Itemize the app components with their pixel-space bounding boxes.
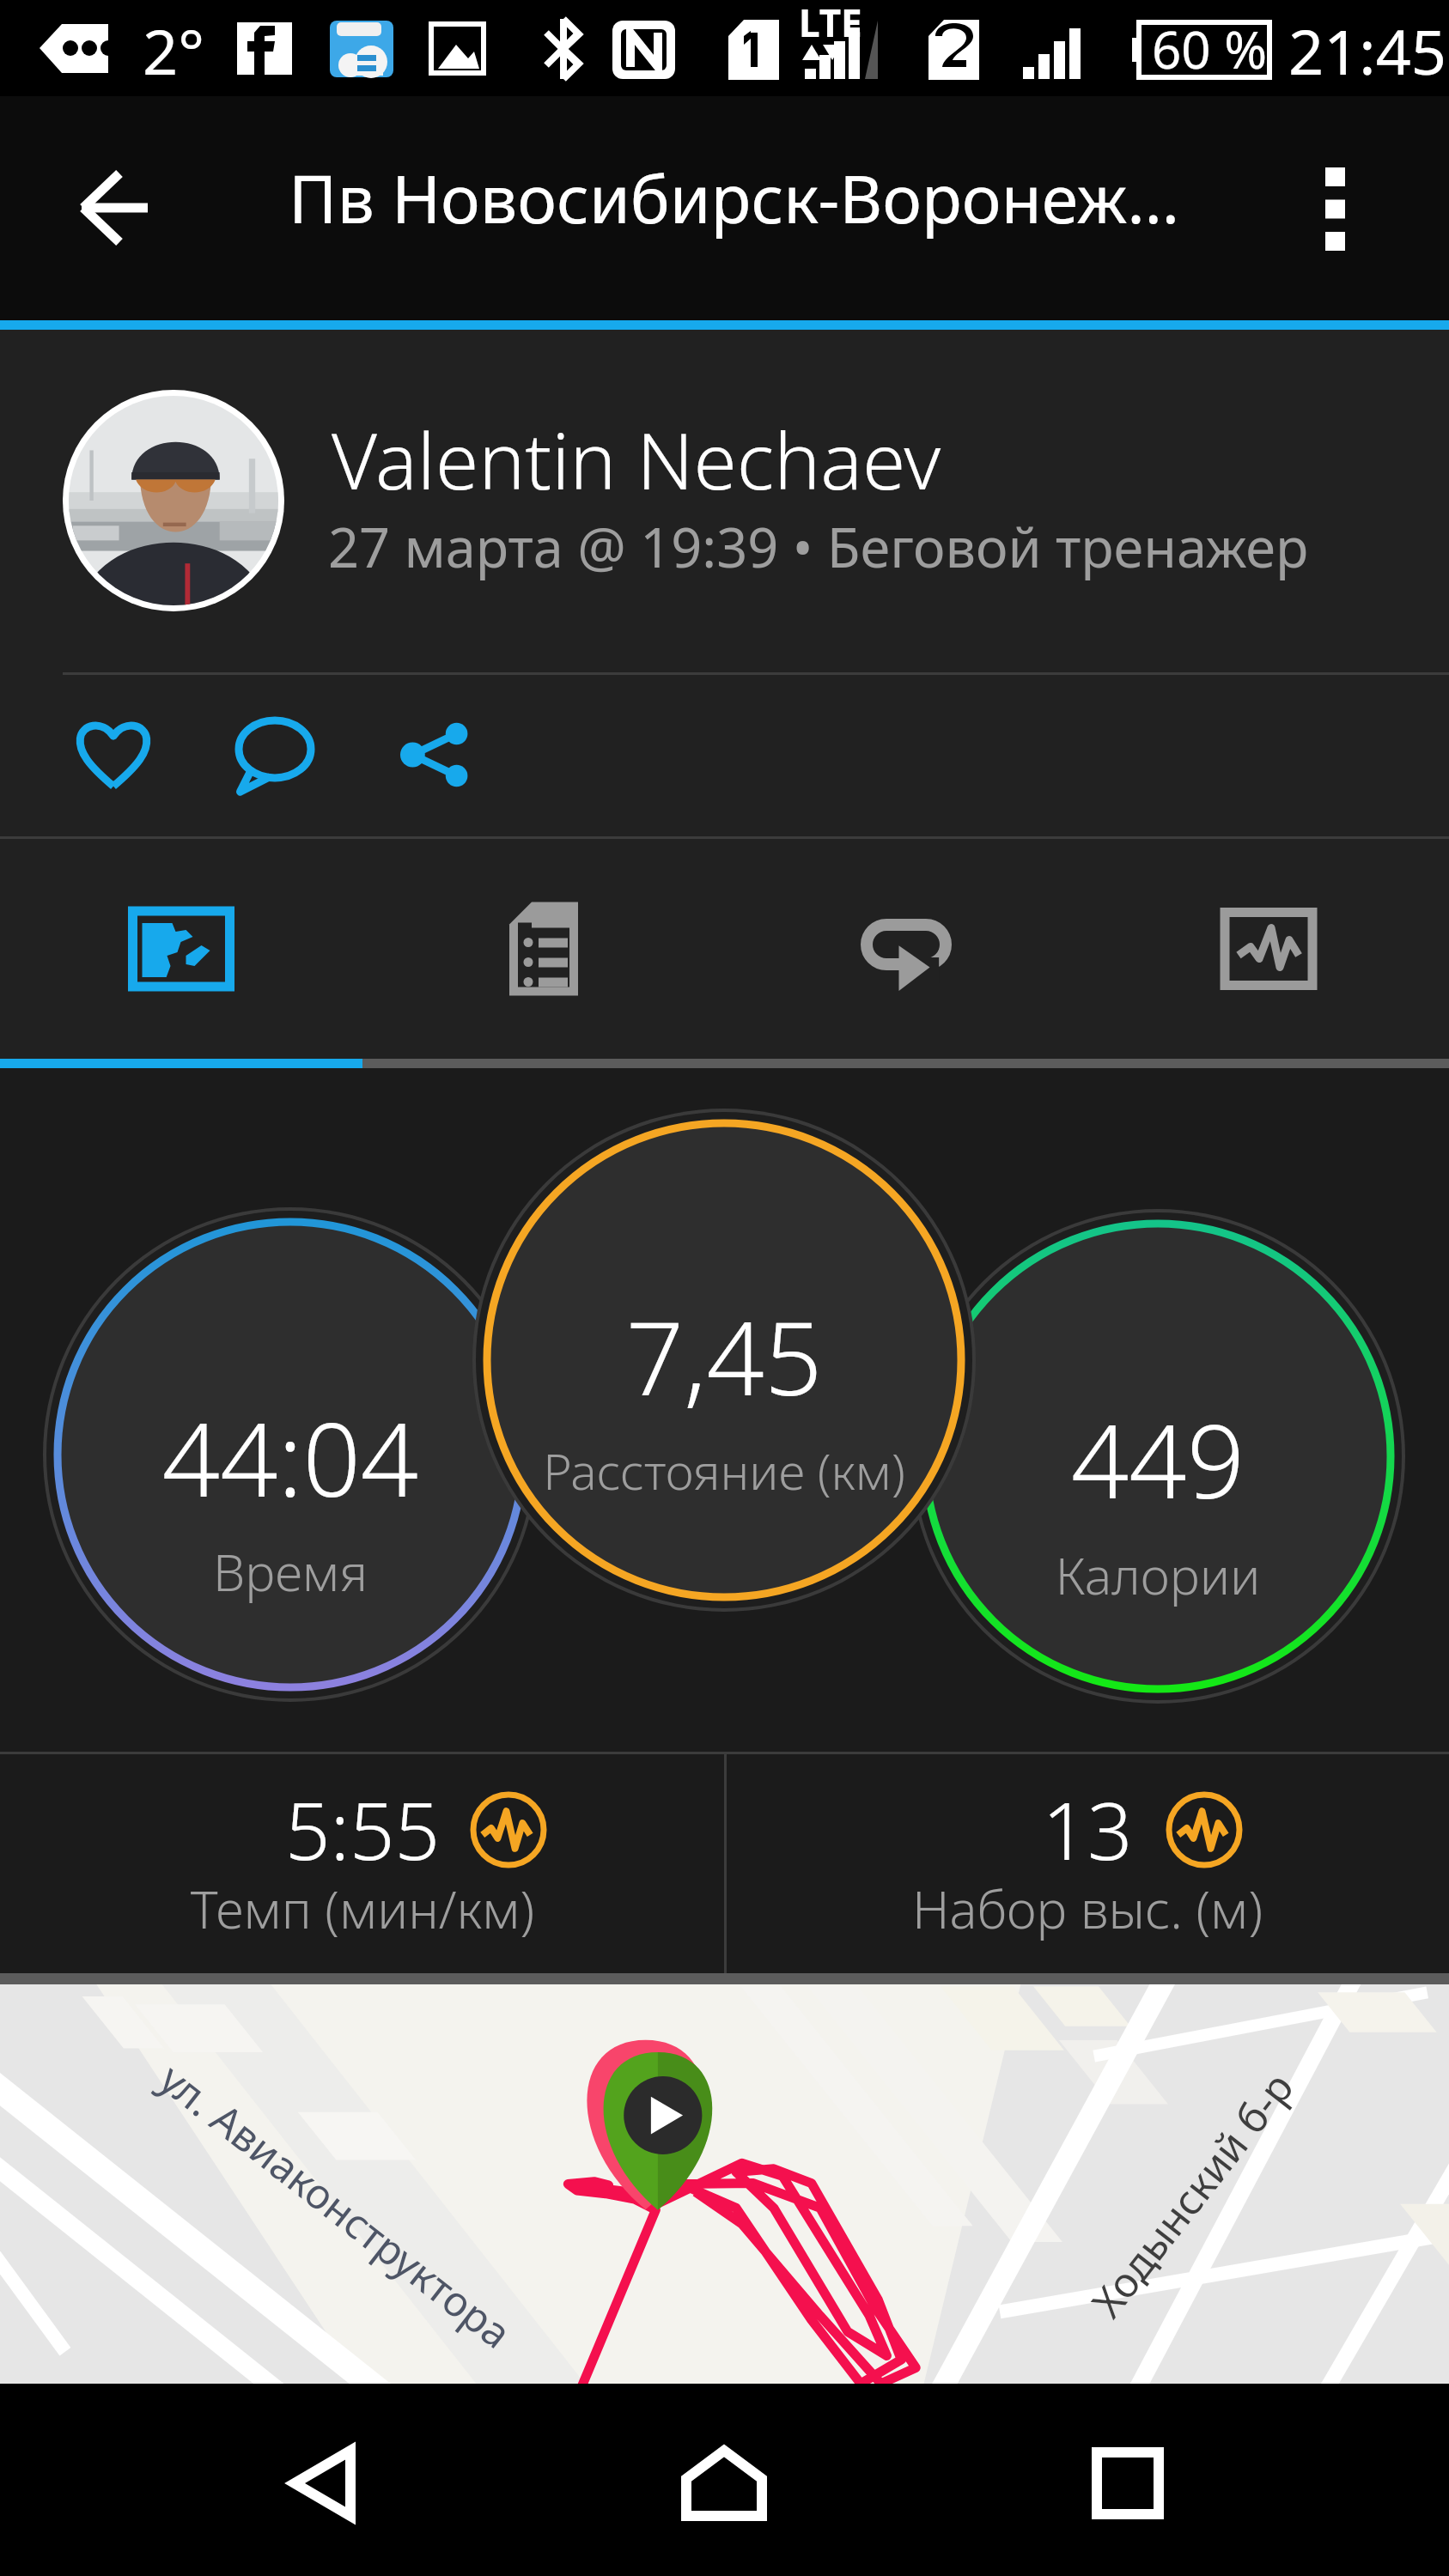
staticText: Набор выс. (м) [830,1874,1345,1944]
button[interactable]: Details [362,839,725,1059]
button[interactable]: Back [40,135,186,281]
button[interactable]: Время [58,1222,523,1687]
button[interactable]: Profile photo [69,396,278,605]
button[interactable]: Home [651,2410,797,2556]
staticText: Темп (мин/км) [105,1874,620,1944]
button[interactable]: Recent apps [1055,2410,1201,2556]
staticText: 7,45 [466,1287,982,1425]
staticText: Ходынский б-р [1079,2060,1305,2328]
staticText: 21:45 [1288,9,1447,93]
button[interactable]: Charts [1087,839,1449,1059]
button[interactable] [0,1754,724,1988]
button[interactable]: Back [249,2410,395,2556]
staticText: 13 [830,1776,1345,1883]
staticText: Время [33,1537,548,1606]
staticText: 2° [143,9,205,93]
button[interactable]: Share [357,686,512,823]
button[interactable] [727,1754,1449,1988]
button[interactable]: Laps [725,839,1087,1059]
staticText: LTE [799,0,862,48]
staticText: ул. Авиаконструктора [149,2051,524,2360]
staticText: 449 [900,1390,1416,1528]
staticText: 5:55 [105,1776,620,1883]
button[interactable]: Profile photo [0,330,1449,672]
button[interactable]: More options [1266,140,1403,277]
button[interactable]: Chart [470,1791,547,1868]
button[interactable]: Калории [925,1224,1391,1689]
button[interactable]: Like [36,686,191,823]
button[interactable]: Chart [1166,1791,1243,1868]
button[interactable]: Map [0,839,362,1059]
staticText: Калории [900,1540,1416,1609]
staticText: Пв Новосибирск-Воронеж… [289,153,1180,243]
staticText: Valentin Nechaev [332,406,941,513]
staticText: 44:04 [33,1388,548,1527]
button[interactable]: Comment [198,686,352,823]
button[interactable]: Map of route [0,1984,1449,2384]
staticText: 27 марта @ 19:39 • Беговой тренажер [328,510,1309,584]
button[interactable]: Расстояние (км) [487,1116,961,1590]
staticText: 60 % [1152,14,1268,84]
staticText: Расстояние (км) [466,1437,982,1504]
